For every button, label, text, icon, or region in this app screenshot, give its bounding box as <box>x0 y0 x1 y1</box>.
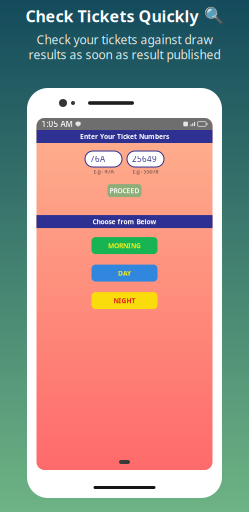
staticText: 🔍 <box>203 7 223 25</box>
staticText: 76A <box>90 154 105 164</box>
staticText: E.g - 55078 <box>132 168 158 175</box>
button[interactable]: MORNING <box>91 237 157 254</box>
staticText: MORNING <box>108 241 141 250</box>
staticText: Enter Your Ticket Numbers <box>80 132 169 141</box>
staticText: E.g - 47A <box>93 168 113 175</box>
button[interactable]: NIGHT <box>91 292 157 309</box>
staticText: 1:05 AM <box>41 119 72 129</box>
staticText: Choose from Below <box>92 217 156 226</box>
staticText: Check Tickets Quickly <box>25 5 198 27</box>
staticText: NIGHT <box>113 296 135 305</box>
staticText: Check your tickets against draw <box>36 31 212 47</box>
staticText: results as soon as result published <box>28 46 220 62</box>
button[interactable]: PROCEED <box>107 184 141 197</box>
staticText: 25649 <box>132 154 157 164</box>
button[interactable]: DAY <box>91 265 157 282</box>
staticText: DAY <box>118 269 131 278</box>
staticText: PROCEED <box>109 186 139 195</box>
